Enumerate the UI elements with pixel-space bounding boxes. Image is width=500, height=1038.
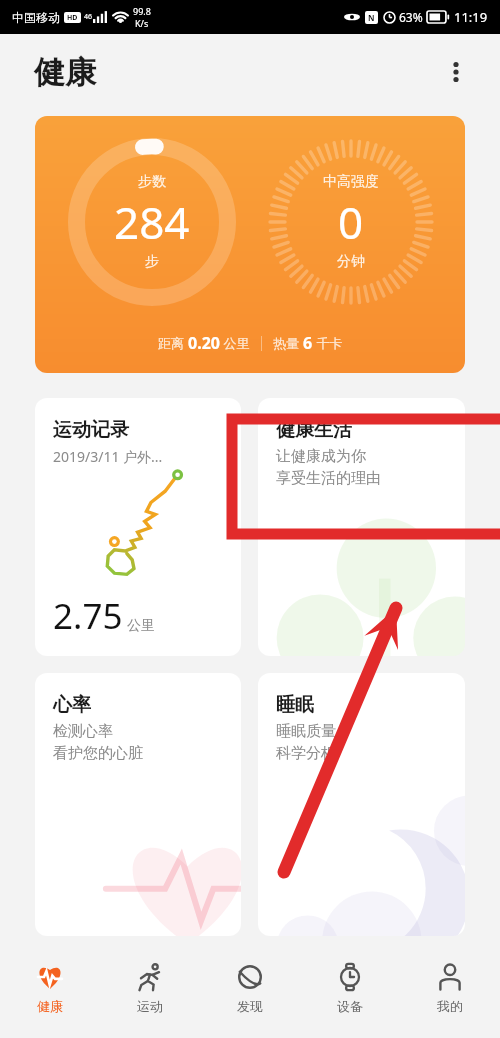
staticText: 0 — [338, 192, 364, 252]
staticText: 睡眠质量 — [276, 722, 336, 741]
staticText: 看护您的心脏 — [53, 744, 143, 763]
staticText: 我的 — [437, 998, 463, 1014]
staticText: 健康 — [34, 53, 96, 92]
staticText: 0.20 — [188, 332, 220, 354]
staticText: 千卡 — [313, 334, 343, 352]
staticText: HD — [67, 13, 78, 23]
staticText: 健康生活 — [276, 418, 352, 442]
staticText: 步数 — [138, 173, 166, 191]
staticText: 99.8 — [133, 5, 151, 17]
button[interactable]: 设备 — [300, 950, 400, 1038]
staticText: 公里 — [220, 334, 250, 352]
button[interactable]: 健康 — [0, 950, 100, 1038]
staticText: 公里 — [127, 617, 155, 635]
button[interactable]: 步数 — [35, 116, 465, 373]
staticText: N — [368, 12, 375, 23]
staticText: 284 — [114, 192, 190, 252]
staticText: 热量 — [273, 334, 303, 352]
staticText: 发现 — [237, 998, 263, 1014]
staticText: 运动 — [137, 998, 163, 1014]
staticText: 63% — [399, 9, 423, 25]
button[interactable]: 我的 — [400, 950, 500, 1038]
staticText: 6 — [303, 332, 313, 354]
staticText: 让健康成为你 — [276, 447, 366, 466]
staticText: 心率 — [53, 693, 91, 717]
staticText: 睡眠 — [276, 693, 314, 717]
staticText: 46 — [84, 12, 93, 22]
button[interactable]: 睡眠 — [258, 673, 465, 936]
staticText: 运动记录 — [53, 418, 129, 442]
button[interactable]: 运动记录 — [35, 398, 241, 656]
staticText: 中高强度 — [323, 173, 379, 191]
button[interactable]: More options — [434, 50, 478, 94]
button[interactable]: 健康生活 — [258, 398, 465, 656]
staticText: 享受生活的理由 — [276, 469, 381, 488]
staticText: 2.75 — [53, 592, 123, 640]
staticText: 11:19 — [454, 8, 488, 26]
staticText: 中国移动 — [12, 10, 60, 25]
staticText: 检测心率 — [53, 722, 113, 741]
staticText: 2019/3/11 户外... — [53, 447, 163, 466]
button[interactable]: 心率 — [35, 673, 241, 936]
staticText: K/s — [135, 17, 149, 29]
staticText: 设备 — [337, 998, 363, 1014]
staticText: 健康 — [37, 998, 63, 1014]
staticText: 距离 — [158, 334, 188, 352]
button[interactable]: 发现 — [200, 950, 300, 1038]
staticText: 科学分析 — [276, 744, 336, 763]
staticText: 分钟 — [337, 253, 365, 271]
staticText: 步 — [145, 253, 159, 271]
button[interactable]: 运动 — [100, 950, 200, 1038]
